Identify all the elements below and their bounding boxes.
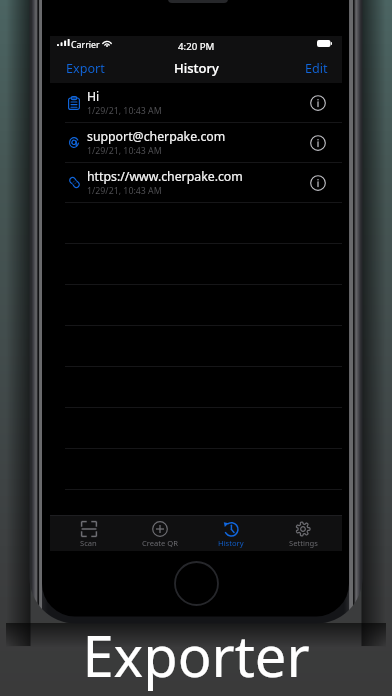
button[interactable]: Info xyxy=(293,83,342,122)
button[interactable]: Export xyxy=(61,56,110,81)
staticText: Edit xyxy=(305,60,328,77)
staticText: 1/29/21, 10:43 AM xyxy=(87,185,162,197)
button[interactable]: Scan xyxy=(53,516,124,551)
staticText: Settings xyxy=(289,538,318,548)
button[interactable]: Hi xyxy=(50,83,342,122)
button[interactable]: Edit xyxy=(300,56,333,81)
staticText: Export xyxy=(66,60,105,77)
staticText: Carrier xyxy=(71,39,100,51)
staticText: Hi xyxy=(87,88,100,105)
staticText: Exporter xyxy=(0,617,392,693)
staticText: Scan xyxy=(80,538,97,548)
staticText: History xyxy=(174,59,219,77)
button[interactable]: Info xyxy=(293,123,342,162)
staticText: History xyxy=(218,538,244,548)
staticText: Create QR xyxy=(142,538,178,548)
staticText: support@cherpake.com xyxy=(87,128,226,145)
staticText: 1/29/21, 10:43 AM xyxy=(87,105,162,117)
button[interactable]: Create QR xyxy=(124,516,195,551)
button[interactable]: Settings xyxy=(267,516,339,551)
button[interactable]: support@cherpake.com xyxy=(50,123,342,162)
button[interactable]: Info xyxy=(293,163,342,202)
button[interactable]: History xyxy=(195,516,267,551)
staticText: 1/29/21, 10:43 AM xyxy=(87,145,162,157)
button[interactable]: https://www.cherpake.com xyxy=(50,163,342,202)
staticText: https://www.cherpake.com xyxy=(87,168,243,185)
staticText: 4:20 PM xyxy=(178,40,215,53)
